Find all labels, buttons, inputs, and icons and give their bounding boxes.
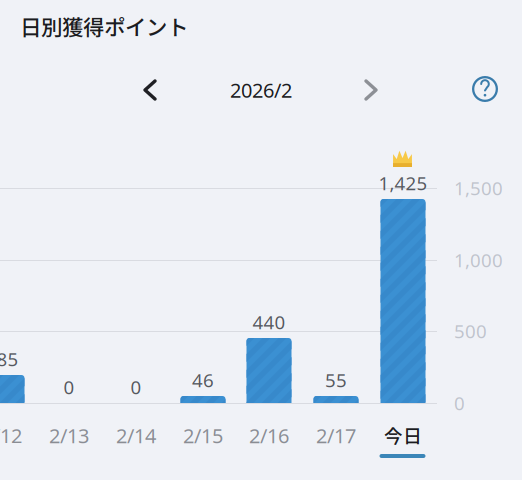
staticText: 440 <box>252 310 285 334</box>
staticText: 日別獲得ポイント <box>20 11 188 41</box>
staticText: 1,425 <box>378 171 427 195</box>
button[interactable]: Help <box>465 69 505 109</box>
staticText: 185 <box>0 347 18 371</box>
staticText: 1,000 <box>454 248 503 272</box>
staticText: 2/12 <box>0 422 22 449</box>
staticText: 55 <box>325 368 347 392</box>
staticText: 2026/2 <box>230 77 292 103</box>
staticText: 今日 <box>384 421 422 448</box>
staticText: 0 <box>454 391 465 415</box>
staticText: 0 <box>130 375 141 399</box>
button[interactable]: Previous month <box>128 68 172 112</box>
staticText: 1,500 <box>454 176 503 200</box>
staticText: 46 <box>192 368 214 392</box>
staticText: 2/13 <box>49 422 89 449</box>
staticText: 2/17 <box>316 422 356 449</box>
staticText: 2/14 <box>116 422 156 449</box>
staticText: 0 <box>63 375 74 399</box>
staticText: 500 <box>454 319 487 343</box>
staticText: 2/16 <box>249 422 289 449</box>
staticText: 2/15 <box>183 422 223 449</box>
button[interactable]: Next month <box>349 68 393 112</box>
button[interactable]: 2026/2 <box>206 73 316 107</box>
